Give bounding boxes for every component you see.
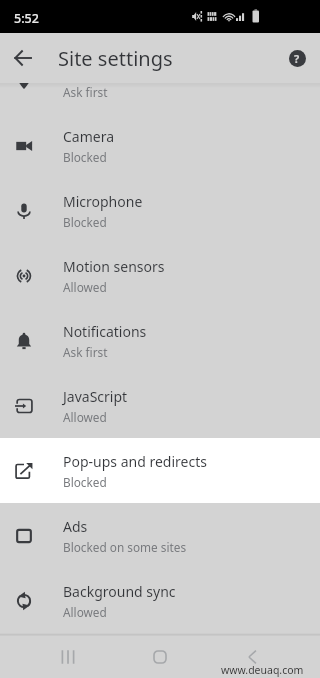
button[interactable]: Ads [0,503,320,568]
staticText: Ads [63,517,88,536]
staticText: Blocked on some sites [63,539,187,555]
staticText: Camera [63,127,115,146]
button[interactable]: Home [136,636,184,678]
staticText: Motion sensors [63,257,165,276]
button[interactable]: Pop-ups and redirects [0,438,320,503]
staticText: Site settings [58,45,173,72]
staticText: Ask first [63,344,108,360]
staticText: JavaScript [63,387,128,406]
staticText: www.deuaq.com [221,663,304,677]
button[interactable]: Camera [0,113,320,178]
staticText: Blocked [63,214,107,230]
staticText: Blocked [63,474,107,490]
staticText: ? [294,51,300,66]
staticText: Allowed [63,409,107,425]
button[interactable]: Location [0,83,320,113]
staticText: Allowed [63,279,107,295]
staticText: Pop-ups and redirects [63,452,207,471]
button[interactable]: Back [11,46,35,70]
staticText: 5:52 [14,10,39,27]
staticText: Microphone [63,192,143,211]
button[interactable]: Microphone [0,178,320,243]
staticText: Notifications [63,322,147,341]
staticText: Background sync [63,582,176,601]
button[interactable]: Back [228,636,276,678]
staticText: Blocked [63,149,107,165]
button[interactable]: Motion sensors [0,243,320,308]
staticText: Ask first [63,84,108,100]
staticText: Allowed [63,604,107,620]
button[interactable]: JavaScript [0,373,320,438]
button[interactable]: Recent apps [44,636,92,678]
button[interactable]: Help [285,46,309,70]
button[interactable]: Background sync [0,568,320,633]
button[interactable]: Notifications [0,308,320,373]
